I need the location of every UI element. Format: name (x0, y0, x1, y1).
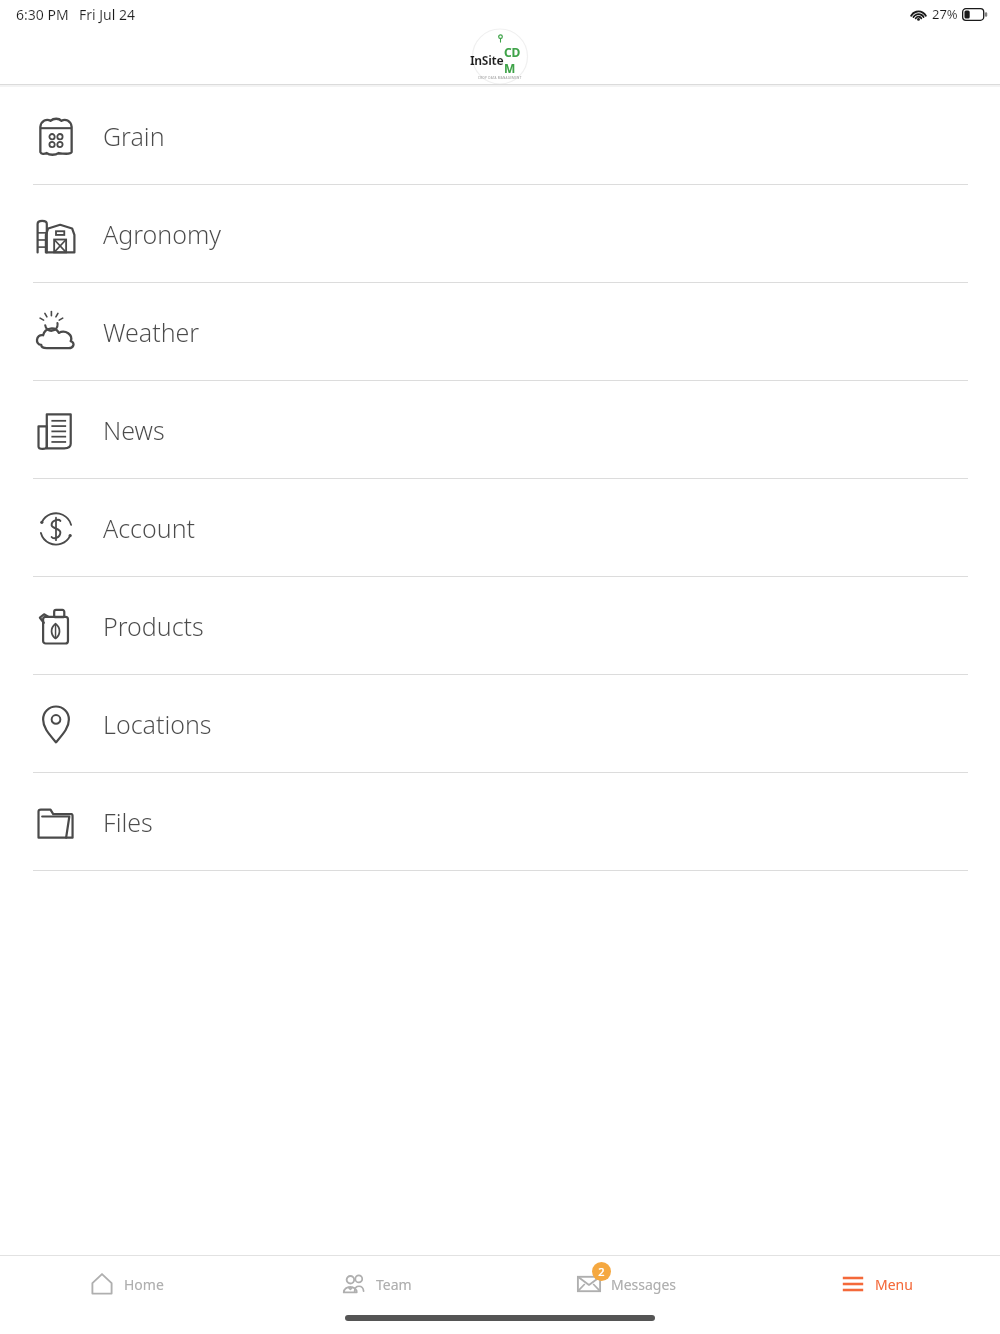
button[interactable]: Home (0, 1256, 250, 1312)
staticText: Account (103, 511, 196, 545)
button[interactable]: News (0, 381, 1000, 478)
staticText: Locations (103, 707, 212, 741)
button[interactable]: 2 (500, 1256, 750, 1312)
button[interactable]: Files (0, 773, 1000, 870)
button[interactable]: InSiteCDM logo (470, 28, 530, 85)
staticText: Products (103, 609, 204, 643)
staticText: Messages (611, 1275, 677, 1294)
button[interactable]: Locations (0, 675, 1000, 772)
staticText: CDM (504, 44, 530, 76)
staticText: Weather (103, 315, 200, 349)
staticText: Home (124, 1275, 164, 1294)
button[interactable]: Products (0, 577, 1000, 674)
button[interactable]: Menu (750, 1256, 1000, 1312)
button[interactable]: Team (250, 1256, 500, 1312)
staticText: CROP DATA MANAGEMENT (478, 76, 522, 80)
staticText: 2 (598, 1264, 605, 1279)
staticText: InSite (470, 52, 504, 68)
staticText: Files (103, 805, 153, 839)
button[interactable]: Weather (0, 283, 1000, 380)
staticText: Fri Jul 24 (79, 5, 136, 24)
button[interactable]: Agronomy (0, 185, 1000, 282)
staticText: Team (376, 1275, 412, 1294)
staticText: 27% (932, 5, 958, 23)
staticText: Agronomy (103, 217, 221, 251)
staticText: Menu (875, 1275, 913, 1294)
staticText: 6:30 PM (16, 5, 69, 24)
staticText: Grain (103, 119, 165, 153)
staticText: News (103, 413, 165, 447)
button[interactable]: Account (0, 479, 1000, 576)
button[interactable]: Grain (0, 87, 1000, 184)
